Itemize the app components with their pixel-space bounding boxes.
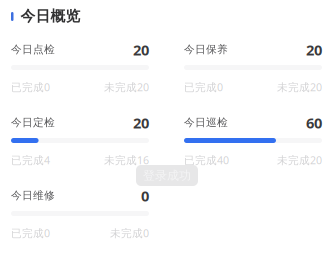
staticText: 20 — [133, 40, 149, 59]
staticText: 已完成4 — [11, 153, 50, 167]
staticText: 今日保养 — [184, 43, 228, 56]
staticText: 未完成20 — [277, 153, 322, 167]
staticText: 已完成0 — [11, 80, 50, 94]
staticText: 今日定检 — [11, 116, 55, 129]
button[interactable]: 今日定检 — [11, 116, 149, 165]
staticText: 20 — [306, 40, 322, 59]
button[interactable]: 今日巡检 — [184, 116, 322, 165]
staticText: 今日点检 — [11, 43, 55, 56]
staticText: 今日概览 — [20, 7, 80, 25]
staticText: 已完成0 — [184, 80, 223, 94]
staticText: 已完成40 — [184, 153, 229, 167]
button[interactable]: 今日保养 — [184, 43, 322, 92]
staticText: 0 — [141, 186, 149, 205]
staticText: 20 — [133, 113, 149, 132]
button[interactable]: 今日维修 — [11, 189, 149, 238]
staticText: 已完成0 — [11, 226, 50, 240]
staticText: 未完成20 — [277, 80, 322, 94]
staticText: 登录成功 — [143, 168, 191, 183]
staticText: 未完成0 — [110, 226, 149, 240]
button[interactable]: 今日点检 — [11, 43, 149, 92]
staticText: 未完成20 — [104, 80, 149, 94]
staticText: 今日维修 — [11, 189, 55, 202]
staticText: 未完成16 — [104, 153, 149, 167]
staticText: 60 — [306, 113, 322, 132]
staticText: 今日巡检 — [184, 116, 228, 129]
